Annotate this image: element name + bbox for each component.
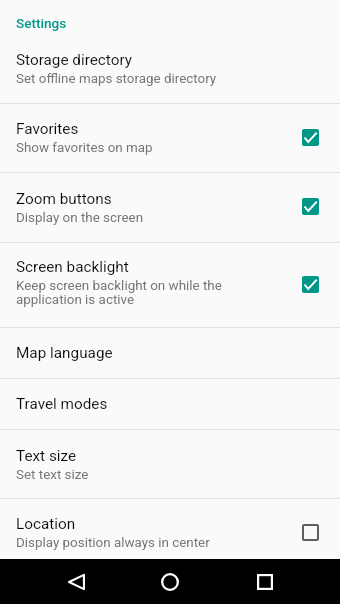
button[interactable]: Screen backlight [0,243,340,327]
button[interactable]: Location [0,499,340,567]
staticText: Show favorites on map [16,140,153,156]
staticText: Travel modes [16,395,108,413]
staticText: Location [16,515,76,533]
staticText: Zoom buttons [16,190,112,208]
staticText: Set text size [16,467,89,483]
staticText: Set offline maps storage directory [16,71,217,87]
button[interactable]: Text size [0,430,340,498]
staticText: Settings [16,15,67,31]
staticText: Display on the screen [16,210,144,226]
button[interactable]: Storage directory [0,35,340,103]
button[interactable]: Zoom buttons [0,173,340,242]
button[interactable]: Favorites [0,104,340,172]
staticText: Display position always in center [16,535,210,551]
staticText: Storage directory [16,51,133,69]
button[interactable]: Home [140,559,200,604]
staticText: Map language [16,344,113,362]
button[interactable]: Travel modes [0,379,340,429]
button[interactable]: Recent apps [235,559,295,604]
button[interactable]: Back [46,559,106,604]
staticText: Text size [16,447,77,465]
staticText: Screen backlight [16,258,129,276]
staticText: Keep screen backlight on while the appli… [16,278,286,308]
staticText: Favorites [16,120,79,138]
button[interactable]: Map language [0,328,340,378]
